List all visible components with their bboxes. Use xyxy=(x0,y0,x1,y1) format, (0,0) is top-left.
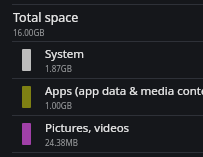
staticText: Apps (app data & media content) xyxy=(45,83,203,99)
staticText: Pictures, videos xyxy=(45,120,130,136)
staticText: 24.38MB xyxy=(45,137,78,148)
staticText: Total space xyxy=(13,9,79,26)
staticText: System xyxy=(45,46,85,62)
button[interactable]: Apps (app data & media content) xyxy=(0,79,203,115)
staticText: 1.87GB xyxy=(45,63,72,74)
staticText: 1.00GB xyxy=(45,100,72,111)
button[interactable]: System xyxy=(0,42,203,78)
staticText: 16.00GB xyxy=(13,27,45,38)
button[interactable]: Pictures, videos xyxy=(0,116,203,152)
